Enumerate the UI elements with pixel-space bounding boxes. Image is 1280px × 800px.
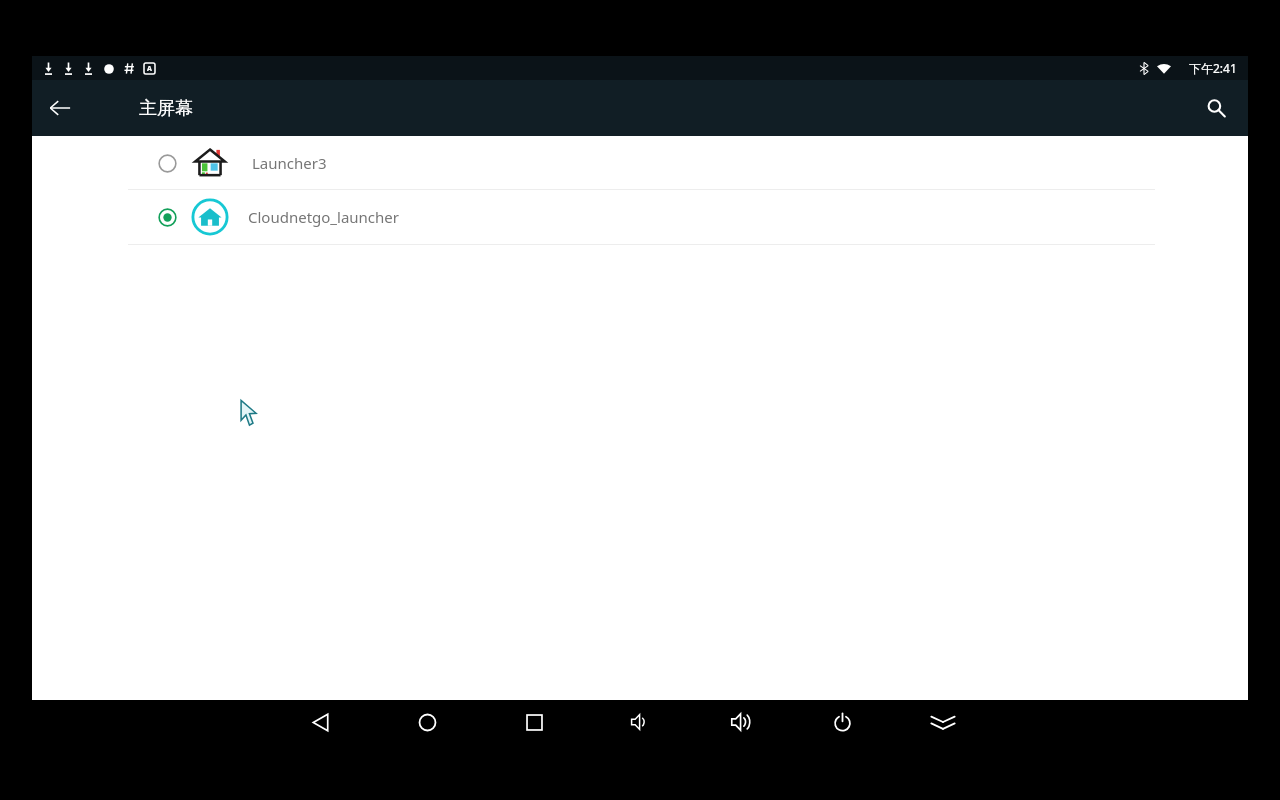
button[interactable]: Volume down xyxy=(614,696,666,748)
button[interactable]: Hide navigation bar xyxy=(917,696,969,748)
button[interactable]: Volume up xyxy=(715,696,767,748)
staticText: 主屏幕 xyxy=(139,97,193,120)
button[interactable]: Cloudnetgo_launcher xyxy=(32,190,1248,244)
button[interactable]: Power xyxy=(816,696,868,748)
button[interactable]: Home xyxy=(401,696,453,748)
staticText: Cloudnetgo_launcher xyxy=(248,207,399,227)
staticText: Launcher3 xyxy=(252,153,327,173)
button[interactable]: Recent apps xyxy=(508,696,560,748)
button[interactable]: Back xyxy=(294,696,346,748)
staticText: 下午2:41 xyxy=(1189,60,1237,76)
staticText: A xyxy=(147,64,152,74)
button[interactable]: Back xyxy=(36,84,84,132)
button[interactable]: Launcher3 xyxy=(32,136,1248,189)
button[interactable]: Search xyxy=(1192,84,1240,132)
